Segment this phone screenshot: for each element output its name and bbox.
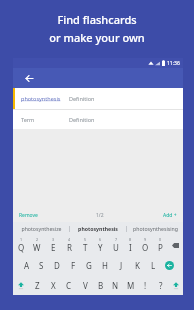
- staticText: R: [67, 242, 72, 253]
- button[interactable]: J: [113, 255, 129, 275]
- staticText: photosynthesis: [21, 95, 61, 102]
- staticText: Term: [21, 116, 35, 123]
- staticText: 2: [36, 237, 39, 242]
- button[interactable]: 7: [108, 235, 123, 255]
- staticText: N: [112, 280, 119, 291]
- staticText: W: [33, 242, 41, 253]
- button[interactable]: X: [45, 275, 61, 295]
- staticText: 7: [115, 237, 118, 242]
- staticText: Definition: [69, 95, 95, 102]
- button[interactable]: 0: [153, 235, 168, 255]
- button[interactable]: G: [81, 255, 97, 275]
- button[interactable]: K: [129, 255, 145, 275]
- staticText: 6: [99, 237, 102, 242]
- staticText: Q: [18, 242, 25, 253]
- button[interactable]: M: [123, 275, 138, 295]
- staticText: Add +: [163, 212, 177, 219]
- staticText: H: [102, 260, 108, 271]
- button[interactable]: Remove: [13, 210, 44, 221]
- staticText: photosynthesising: [133, 225, 178, 232]
- staticText: A: [24, 260, 30, 271]
- staticText: Remove: [19, 212, 38, 219]
- staticText: 0: [159, 237, 162, 242]
- staticText: C: [66, 280, 72, 291]
- staticText: G: [86, 260, 92, 271]
- button[interactable]: 1: [13, 235, 29, 255]
- staticText: E: [51, 242, 56, 253]
- staticText: photosynthesis: [78, 225, 118, 232]
- button[interactable]: B: [93, 275, 108, 295]
- button[interactable]: Z: [29, 275, 45, 295]
- staticText: Find flashcards: [57, 12, 137, 27]
- button[interactable]: ?: [153, 275, 168, 295]
- staticText: !: [144, 280, 147, 291]
- staticText: Y: [98, 242, 103, 253]
- button[interactable]: Term: [13, 110, 183, 129]
- staticText: photosynthesize: [21, 225, 62, 232]
- staticText: 5: [84, 237, 87, 242]
- button[interactable]: !: [138, 275, 153, 295]
- staticText: 1: [20, 237, 23, 242]
- staticText: F: [71, 260, 76, 271]
- button[interactable]: Add +: [157, 210, 183, 221]
- button[interactable]: photosynthesis: [70, 222, 126, 235]
- staticText: U: [113, 242, 119, 253]
- staticText: D: [54, 260, 60, 271]
- button[interactable]: photosynthesising: [127, 222, 183, 235]
- button[interactable]: D: [49, 255, 65, 275]
- staticText: T: [83, 242, 88, 253]
- staticText: B: [98, 280, 104, 291]
- button[interactable]: 8: [123, 235, 138, 255]
- button[interactable]: N: [108, 275, 123, 295]
- button[interactable]: 6: [93, 235, 108, 255]
- staticText: ?: [159, 280, 163, 291]
- button[interactable]: 3: [45, 235, 61, 255]
- button[interactable]: Backspace: [168, 235, 183, 255]
- staticText: 1/2: [96, 212, 104, 219]
- button[interactable]: H: [97, 255, 113, 275]
- staticText: K: [135, 260, 140, 271]
- staticText: 8: [129, 237, 132, 242]
- staticText: S: [39, 260, 44, 271]
- staticText: Definition: [69, 116, 95, 123]
- staticText: M: [127, 280, 135, 291]
- staticText: 11:36: [167, 60, 180, 67]
- staticText: 9: [144, 237, 147, 242]
- button[interactable]: V: [77, 275, 93, 295]
- button[interactable]: Back: [21, 70, 37, 86]
- staticText: 3: [52, 237, 55, 242]
- button[interactable]: L: [145, 255, 161, 275]
- button[interactable]: photosynthesis: [13, 88, 183, 109]
- button[interactable]: 5: [77, 235, 93, 255]
- button[interactable]: 2: [29, 235, 45, 255]
- staticText: P: [158, 242, 163, 253]
- staticText: X: [51, 280, 56, 291]
- button[interactable]: 4: [61, 235, 77, 255]
- button[interactable]: F: [65, 255, 81, 275]
- staticText: V: [83, 280, 88, 291]
- button[interactable]: A: [19, 255, 34, 275]
- staticText: I: [129, 242, 132, 253]
- button[interactable]: Enter: [161, 255, 177, 275]
- staticText: or make your own: [49, 30, 145, 45]
- button[interactable]: S: [34, 255, 49, 275]
- button[interactable]: photosynthesize: [13, 222, 69, 235]
- staticText: 4: [68, 237, 71, 242]
- staticText: L: [151, 260, 156, 271]
- button[interactable]: Shift: [168, 275, 183, 295]
- button[interactable]: C: [61, 275, 77, 295]
- staticText: J: [120, 260, 123, 271]
- button[interactable]: Shift: [13, 275, 29, 295]
- staticText: Z: [35, 280, 40, 291]
- staticText: O: [142, 242, 149, 253]
- button[interactable]: 9: [138, 235, 153, 255]
